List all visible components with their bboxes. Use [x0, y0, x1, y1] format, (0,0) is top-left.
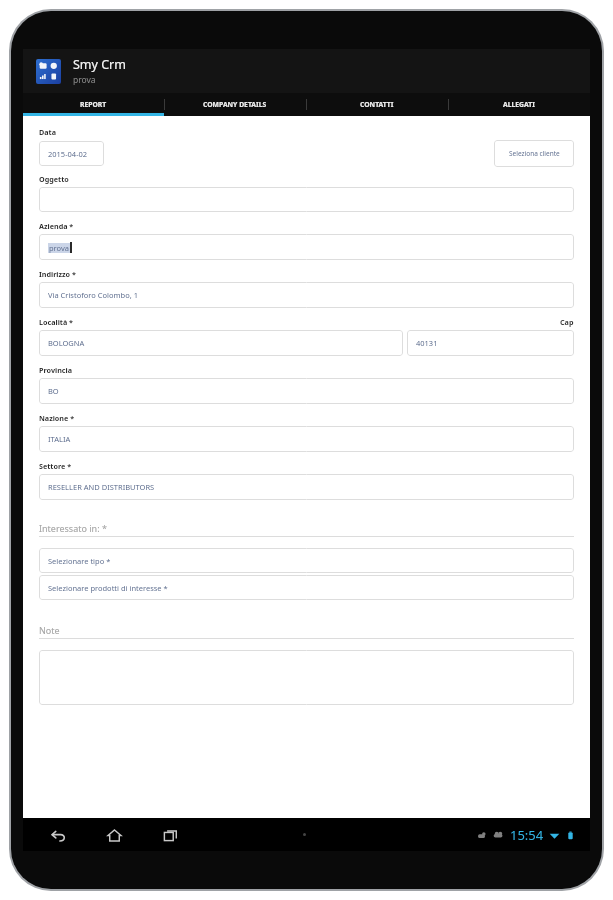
button[interactable]: CONTATTI	[306, 93, 448, 116]
staticText: prova	[49, 243, 69, 253]
staticText: BOLOGNA	[48, 338, 85, 348]
staticText: Località *	[39, 317, 74, 327]
staticText: Data	[39, 127, 56, 137]
staticText: Azienda *	[39, 221, 74, 231]
staticText: Smy Crm	[73, 56, 126, 73]
button[interactable]: Status	[477, 826, 576, 844]
button[interactable]: Back	[45, 822, 71, 848]
staticText: Interessato in: *	[39, 522, 107, 534]
staticText: Provincia	[39, 365, 72, 375]
staticText: Note	[39, 624, 60, 636]
staticText: RESELLER AND DISTRIBUTORS	[48, 482, 155, 492]
button[interactable]: REPORT	[23, 93, 164, 116]
button[interactable]	[39, 650, 574, 705]
staticText: Indirizzo *	[39, 269, 76, 279]
button[interactable]: COMPANY DETAILS	[164, 93, 306, 116]
staticText: Settore *	[39, 461, 72, 471]
button[interactable]	[39, 187, 574, 212]
staticText: ALLEGATI	[503, 100, 535, 109]
button[interactable]: 40131	[407, 330, 574, 356]
button[interactable]: ALLEGATI	[448, 93, 590, 116]
button[interactable]: Seleziona cliente	[494, 140, 574, 167]
staticText: Seleziona cliente	[509, 149, 560, 158]
button[interactable]: RESELLER AND DISTRIBUTORS	[39, 474, 574, 500]
button[interactable]: Home	[101, 822, 127, 848]
staticText: Via Cristoforo Colombo, 1	[48, 290, 138, 300]
staticText: REPORT	[80, 100, 107, 109]
staticText: Selezionare tipo *	[48, 556, 111, 566]
staticText: prova	[73, 74, 96, 86]
staticText: CONTATTI	[360, 100, 394, 109]
staticText: 2015-04-02	[48, 149, 88, 159]
button[interactable]: Selezionare tipo *	[39, 548, 574, 573]
staticText: Selezionare prodotti di interesse *	[48, 583, 168, 593]
button[interactable]: BOLOGNA	[39, 330, 403, 356]
button[interactable]: BO	[39, 378, 574, 404]
staticText: Cap	[560, 317, 574, 327]
staticText: BO	[48, 386, 59, 396]
staticText: 15:54	[510, 826, 544, 844]
button[interactable]: ITALIA	[39, 426, 574, 452]
button[interactable]: prova	[39, 234, 574, 260]
staticText: ITALIA	[48, 434, 71, 444]
button[interactable]: 2015-04-02	[39, 141, 104, 166]
other: App icon	[36, 59, 61, 84]
button[interactable]: Via Cristoforo Colombo, 1	[39, 282, 574, 308]
staticText: Oggetto	[39, 174, 69, 184]
button[interactable]: Selezionare prodotti di interesse *	[39, 575, 574, 600]
staticText: Nazione *	[39, 413, 75, 423]
staticText: 40131	[416, 338, 438, 348]
staticText: COMPANY DETAILS	[203, 100, 267, 109]
button[interactable]: Recent apps	[157, 822, 183, 848]
